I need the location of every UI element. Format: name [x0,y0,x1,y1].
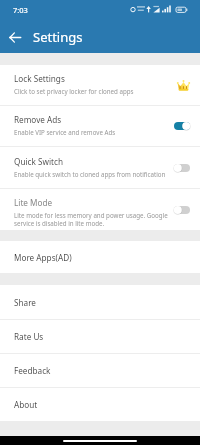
button[interactable]: Switch off [171,203,193,217]
button[interactable]: Lock Settings [0,65,200,105]
button[interactable]: Back [1,22,28,53]
button[interactable]: More Apps(AD) [0,241,200,273]
staticText: Feedback [14,365,51,376]
staticText: Rate Us [14,331,44,342]
button[interactable]: Share [0,285,200,319]
staticText: Settings [33,28,83,46]
staticText: Share [14,297,36,308]
button[interactable]: Lite Mode [0,189,200,230]
button[interactable]: Rate Us [0,320,200,353]
staticText: Lock Settings [14,73,65,84]
staticText: service is disabled in lite mode. [14,219,105,227]
staticText: Remove Ads [14,114,62,125]
staticText: Lite mode for less memory and power usag… [14,211,168,219]
staticText: Lite Mode [14,197,53,208]
staticText: Quick Switch [14,156,63,167]
button[interactable]: Switch on [171,119,193,133]
button[interactable]: VIP [173,77,193,93]
staticText: 7:03 [13,5,28,15]
staticText: More Apps(AD) [14,252,72,263]
button[interactable]: Remove Ads [0,106,200,146]
staticText: Enable quick switch to cloned apps from … [14,170,166,178]
staticText: About [14,399,38,410]
button[interactable]: Switch off [171,161,193,175]
staticText: Click to set privacy locker for cloned a… [14,87,134,95]
button[interactable]: About [0,388,200,421]
staticText: Enable VIP service and remove Ads [14,128,116,136]
button[interactable]: Quick Switch [0,147,200,188]
button[interactable]: Feedback [0,354,200,387]
